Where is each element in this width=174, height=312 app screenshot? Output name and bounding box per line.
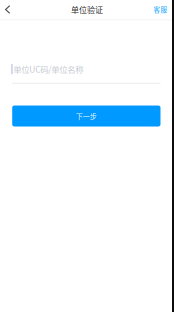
- staticText: 下一步: [76, 111, 97, 121]
- button[interactable]: 客服: [153, 0, 174, 19]
- staticText: 单位UC码/单位名称: [13, 63, 83, 75]
- button[interactable]: 返回: [0, 0, 16, 19]
- button[interactable]: 下一步: [12, 105, 160, 126]
- staticText: 客服: [153, 5, 167, 14]
- staticText: 单位验证: [71, 4, 103, 15]
